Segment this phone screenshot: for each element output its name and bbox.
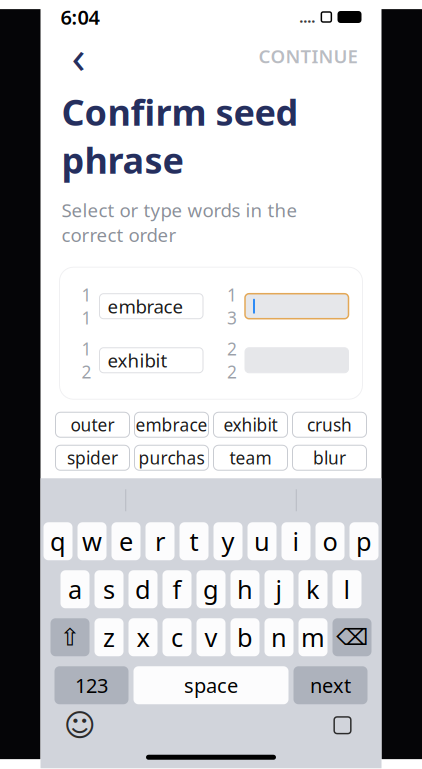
staticText: t (189, 524, 198, 558)
staticText: v (204, 620, 217, 654)
staticText: ⌫ (336, 624, 368, 650)
button[interactable]: a (60, 570, 89, 608)
button[interactable]: crush (292, 412, 366, 437)
staticText: crush (307, 413, 352, 436)
staticText: 13 (227, 283, 237, 329)
staticText: embrace (135, 413, 207, 436)
staticText: n (271, 620, 287, 654)
staticText: Select or type words in the correct orde… (61, 198, 297, 247)
staticText: purchas (138, 446, 204, 469)
button[interactable]: team (213, 445, 287, 470)
button[interactable]: y (213, 522, 242, 560)
staticText: l (343, 572, 350, 606)
staticText: blur (313, 446, 346, 469)
button[interactable]: z (94, 618, 123, 656)
button[interactable]: v (196, 618, 225, 656)
staticText: q (50, 524, 66, 558)
staticText: o (322, 524, 337, 558)
button[interactable]: blur (292, 445, 366, 470)
staticText: 6:04 (60, 4, 99, 30)
staticText: z (103, 620, 115, 654)
button[interactable]: n (264, 618, 293, 656)
staticText: b (237, 620, 253, 654)
button[interactable]: ⌫ (332, 618, 371, 656)
staticText: exhibit (107, 348, 167, 373)
staticText: d (135, 572, 151, 606)
button[interactable]: b (230, 618, 259, 656)
staticText: a (68, 572, 82, 606)
button[interactable]: d (128, 570, 157, 608)
button[interactable]: i (281, 522, 310, 560)
staticText: w (82, 524, 102, 558)
button[interactable]: next (293, 666, 367, 704)
staticText: space (184, 672, 238, 699)
button[interactable]: Emoji (62, 708, 96, 742)
staticText: CONTINUE (258, 44, 357, 68)
staticText: 123 (75, 672, 108, 699)
staticText: h (237, 572, 253, 606)
button[interactable]: q (43, 522, 72, 560)
staticText: 22 (227, 337, 237, 383)
staticText: p (356, 524, 372, 558)
staticText: team (229, 446, 271, 469)
staticText: .... (299, 7, 315, 27)
staticText: g (203, 572, 219, 606)
staticText: next (310, 672, 351, 699)
button[interactable]: c (162, 618, 191, 656)
button[interactable]: m (298, 618, 327, 656)
button[interactable]: ⇧ (50, 618, 89, 656)
button[interactable]: l (332, 570, 361, 608)
staticText: i (292, 524, 299, 558)
staticText: Confirm seed phrase (61, 88, 298, 184)
button[interactable]: j (264, 570, 293, 608)
button[interactable]: spider (55, 445, 129, 470)
button[interactable]: s (94, 570, 123, 608)
staticText: embrace (107, 294, 183, 319)
button[interactable]: outer (55, 412, 129, 437)
staticText: spider (67, 446, 118, 469)
button[interactable]: space (133, 666, 288, 704)
button[interactable]: r (145, 522, 174, 560)
button[interactable]: o (315, 522, 344, 560)
staticText: f (172, 572, 181, 606)
staticText: 12 (81, 337, 91, 383)
staticText: y (221, 524, 234, 558)
staticText: e (119, 524, 133, 558)
staticText: outer (70, 413, 114, 436)
button[interactable]: f (162, 570, 191, 608)
button[interactable]: purchas (134, 445, 208, 470)
button[interactable]: p (349, 522, 378, 560)
staticText: k (306, 572, 320, 606)
button[interactable]: CONTINUE (254, 38, 361, 74)
staticText: 11 (81, 283, 91, 329)
staticText: exhibit (223, 413, 277, 436)
button[interactable]: exhibit (213, 412, 287, 437)
staticText: r (155, 524, 165, 558)
staticText: c (171, 620, 183, 654)
button[interactable]: h (230, 570, 259, 608)
staticText: ‹ (71, 26, 85, 86)
button[interactable]: e (111, 522, 140, 560)
button[interactable]: g (196, 570, 225, 608)
staticText: m (301, 620, 325, 654)
button[interactable]: Word 13 (245, 294, 348, 319)
staticText: ☺ (63, 708, 95, 743)
staticText: s (103, 572, 115, 606)
staticText: x (136, 620, 149, 654)
button[interactable]: Word 12 (99, 348, 203, 373)
button[interactable]: k (298, 570, 327, 608)
button[interactable]: x (128, 618, 157, 656)
button[interactable]: Back (60, 38, 96, 74)
button[interactable]: 123 (54, 666, 128, 704)
button[interactable]: embrace (134, 412, 208, 437)
button[interactable]: u (247, 522, 276, 560)
staticText: j (275, 572, 282, 606)
button[interactable]: w (77, 522, 106, 560)
button[interactable]: Word 11 (99, 294, 203, 319)
button[interactable]: t (179, 522, 208, 560)
button[interactable]: Dictate (325, 708, 359, 742)
staticText: u (254, 524, 270, 558)
staticText: ⇧ (60, 624, 80, 651)
